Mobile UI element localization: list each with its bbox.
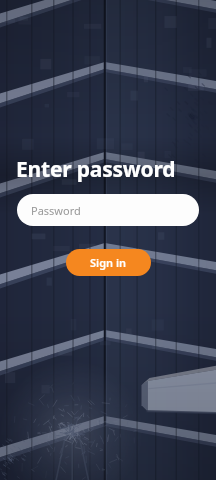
button[interactable]: Sign in bbox=[66, 249, 151, 276]
staticText: Sign in bbox=[90, 255, 127, 270]
staticText: Password bbox=[31, 203, 81, 218]
button[interactable]: Password bbox=[17, 194, 199, 226]
staticText: Enter password bbox=[16, 155, 204, 184]
